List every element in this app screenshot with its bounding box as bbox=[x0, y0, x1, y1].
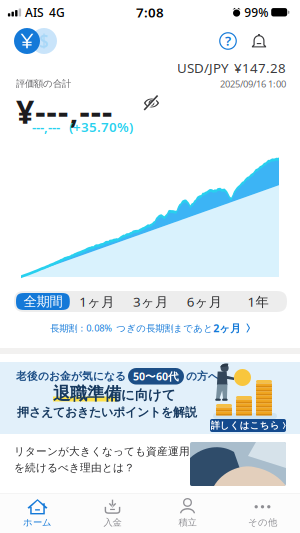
staticText: 2025/09/16 1:00 bbox=[220, 78, 286, 90]
button[interactable]: お知らせ bbox=[249, 32, 269, 50]
button[interactable]: 1ヶ月 bbox=[70, 293, 124, 310]
staticText: に向けて bbox=[121, 387, 176, 403]
staticText: S bbox=[39, 29, 49, 52]
staticText: 1年 bbox=[248, 293, 269, 310]
staticText: ? bbox=[225, 32, 231, 49]
button[interactable]: 積立 bbox=[150, 494, 225, 533]
staticText: 詳しくはこちら bbox=[211, 420, 280, 431]
staticText: 7:08 bbox=[136, 3, 164, 21]
button[interactable]: 6ヶ月 bbox=[177, 293, 231, 310]
staticText: 積立 bbox=[178, 517, 196, 528]
staticText: 退職準備 bbox=[53, 383, 121, 404]
button[interactable]: 入金 bbox=[75, 494, 150, 533]
button[interactable]: その他 bbox=[225, 494, 300, 533]
button[interactable]: ヘルプ bbox=[215, 28, 241, 54]
staticText: リターンが大きくなっても資産運用 bbox=[14, 445, 190, 458]
staticText: ホーム bbox=[23, 517, 52, 528]
button[interactable]: 長期割：0.08% つぎの長期割まであと bbox=[0, 318, 300, 338]
staticText: 99% bbox=[244, 4, 268, 20]
staticText: ¥147.28 bbox=[234, 59, 286, 77]
staticText: 3ヶ月 bbox=[133, 293, 168, 310]
button[interactable]: 全期間 bbox=[16, 293, 70, 310]
button[interactable]: 金額の表示を切り替え bbox=[142, 95, 162, 111]
staticText: 50〜60代 bbox=[133, 369, 179, 383]
staticText: を続けるべき理由とは？ bbox=[14, 461, 135, 474]
button[interactable]: ホーム bbox=[0, 494, 75, 533]
staticText: 押さえておきたいポイントを解説 bbox=[17, 405, 197, 420]
staticText: 2ヶ月 bbox=[213, 321, 241, 335]
staticText: 評価額の合計 bbox=[16, 78, 71, 89]
staticText: の方へ bbox=[186, 370, 219, 383]
staticText: 全期間 bbox=[23, 293, 62, 310]
staticText: 長期割：0.08% つぎの長期割まであと bbox=[50, 322, 213, 334]
staticText: 1ヶ月 bbox=[79, 293, 114, 310]
staticText: 老後のお金が気になる bbox=[16, 370, 126, 383]
staticText: AIS bbox=[25, 4, 44, 20]
staticText: 入金 bbox=[103, 517, 121, 528]
button[interactable]: 通貨を切り替え bbox=[14, 28, 57, 54]
button[interactable]: 退職準備に向けて押さえておきたいポイントを解説 bbox=[0, 362, 300, 434]
button[interactable]: 1年 bbox=[231, 293, 285, 310]
staticText: ¥---,--- bbox=[16, 90, 112, 132]
button[interactable]: 3ヶ月 bbox=[124, 293, 177, 310]
staticText: 6ヶ月 bbox=[187, 293, 222, 310]
staticText: 4G bbox=[49, 4, 65, 20]
button[interactable]: リターンが大きくなっても資産運用 bbox=[0, 436, 300, 494]
staticText: USD/JPY bbox=[177, 59, 229, 77]
staticText: ---,--- (+35.70%) bbox=[32, 118, 133, 136]
staticText: その他 bbox=[248, 517, 277, 528]
